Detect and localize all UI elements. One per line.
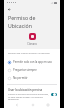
staticText: Permiso de: [8, 14, 36, 21]
button[interactable]: Usar la ubicación precisa: [51, 93, 57, 96]
button[interactable]: Preguntar siempre: [4, 66, 60, 74]
staticText: No permitir: [13, 76, 28, 80]
button[interactable]: Permitir solo con la app en uso: [4, 58, 60, 66]
staticText: Permitir que Cámara acceda a la ubicació…: [8, 52, 50, 55]
button[interactable]: Home: [30, 102, 35, 107]
button[interactable]: No permitir: [4, 74, 60, 82]
staticText: Cuando la ubicación precisa está desacti…: [8, 93, 49, 100]
staticText: Usar la ubicación precisa: [8, 88, 43, 92]
staticText: Preguntar siempre: [13, 68, 37, 72]
staticText: Permitir solo con la app en uso: [13, 60, 52, 64]
staticText: Cámara: [27, 42, 37, 46]
button[interactable]: Back: [7, 7, 12, 12]
button[interactable]: Usar la ubicación precisa: [4, 87, 60, 101]
button[interactable]: Recents: [45, 102, 50, 107]
staticText: Ubicación: [8, 22, 32, 29]
button[interactable]: Back: [14, 102, 19, 107]
